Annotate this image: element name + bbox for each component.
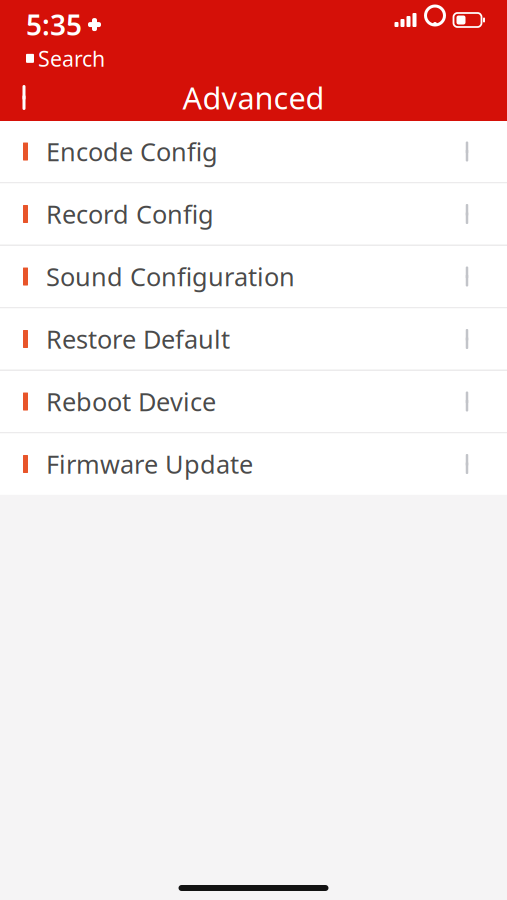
staticText: Encode Config <box>46 135 218 168</box>
button[interactable]: Firmware Update <box>0 433 507 494</box>
button[interactable]: Record Config <box>0 183 507 244</box>
staticText: Sound Configuration <box>46 260 295 293</box>
staticText: Restore Default <box>46 322 230 356</box>
staticText: Advanced <box>182 77 324 118</box>
staticText: 5:35 <box>26 6 82 43</box>
staticText: Reboot Device <box>46 385 216 418</box>
staticText: Search <box>38 44 105 72</box>
staticText: Record Config <box>46 197 214 231</box>
staticText: Firmware Update <box>46 447 253 481</box>
button[interactable]: Search <box>26 44 105 72</box>
button[interactable]: Reboot Device <box>0 371 507 432</box>
button[interactable]: Back <box>0 71 54 123</box>
button[interactable]: Restore Default <box>0 308 507 369</box>
button[interactable]: Encode Config <box>0 121 507 182</box>
button[interactable]: Sound Configuration <box>0 246 507 307</box>
